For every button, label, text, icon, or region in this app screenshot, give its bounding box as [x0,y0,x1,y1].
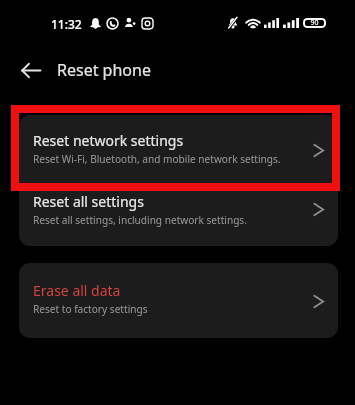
staticText: Reset to factory settings [33,302,148,316]
staticText: Reset phone [57,59,151,81]
button[interactable]: Back [16,55,46,85]
staticText: Reset network settings [33,131,184,150]
staticText: Reset Wi-Fi, Bluetooth, and mobile netwo… [33,152,281,166]
button[interactable]: Reset all settings [19,185,338,245]
staticText: Reset all settings [33,192,144,211]
staticText: 90 [310,18,319,28]
button[interactable]: Erase all data [19,263,338,338]
button[interactable]: Reset network settings [19,125,338,185]
staticText: 11:32 [51,16,82,32]
staticText: Erase all data [33,281,121,300]
staticText: Reset all settings, including network se… [33,213,247,227]
